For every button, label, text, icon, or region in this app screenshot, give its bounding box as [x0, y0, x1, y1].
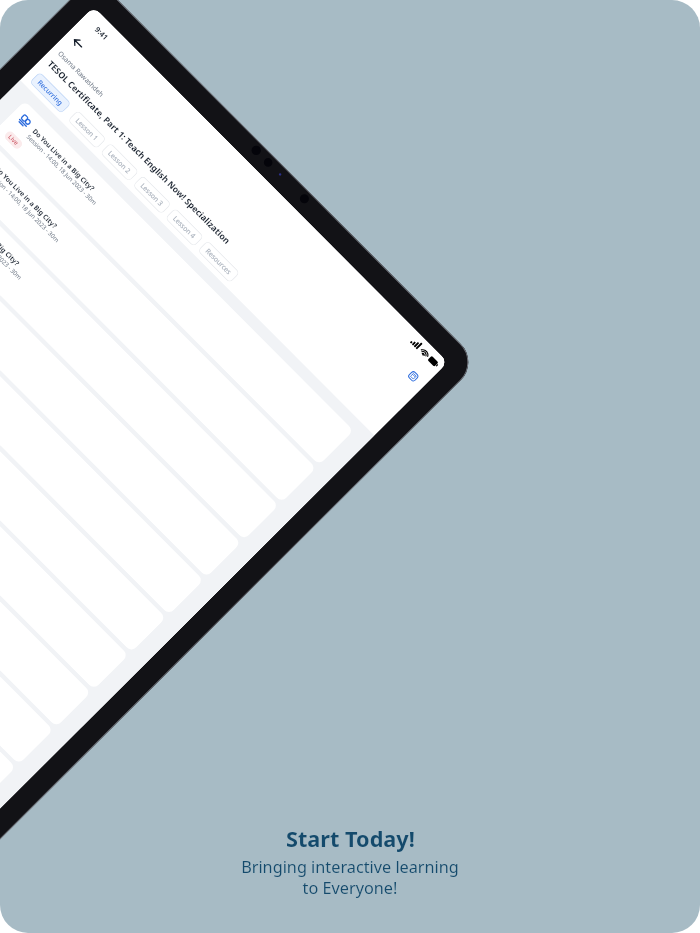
button[interactable]: Live: [0, 288, 166, 652]
staticText: Lesson 1: [74, 116, 100, 143]
staticText: 9:41: [93, 24, 111, 42]
staticText: Osama Rawashdeh: [56, 49, 106, 99]
staticText: TESOL Certificate, Part 1: Teach English…: [45, 58, 233, 247]
button[interactable]: Resources: [197, 240, 240, 283]
button[interactable]: Live: [0, 213, 241, 577]
staticText: Do You Live in a Big City?: [0, 164, 59, 231]
button[interactable]: Lesson 3: [132, 175, 172, 215]
staticText: Resources: [203, 246, 234, 277]
button[interactable]: Live: [0, 400, 53, 764]
staticText: Lesson 3: [139, 181, 165, 208]
button[interactable]: Live: [0, 325, 129, 690]
staticText: Do You Live in a Big City?: [30, 127, 97, 193]
button[interactable]: Live: [0, 437, 16, 802]
button[interactable]: Back: [68, 33, 88, 53]
button[interactable]: Live: [0, 175, 279, 540]
button[interactable]: Recurring: [29, 72, 72, 114]
staticText: Recurring: [35, 78, 65, 108]
button[interactable]: Lesson 4: [165, 208, 204, 247]
staticText: Session - 14:00, 18 Jun 2023 - 30m: [25, 133, 98, 207]
button[interactable]: Live: [0, 138, 316, 503]
button[interactable]: Live: [0, 250, 204, 615]
staticText: Do You Live in a Big City?: [0, 202, 22, 268]
button[interactable]: Live: [0, 100, 354, 465]
button[interactable]: Documents: [407, 370, 420, 383]
staticText: Session - 14:00, 18 Jun 2023 - 30m: [0, 170, 61, 244]
button[interactable]: Lesson 2: [100, 142, 139, 182]
staticText: Lesson 4: [171, 214, 198, 241]
staticText: Start Today!: [286, 824, 415, 854]
button[interactable]: Live: [0, 362, 91, 727]
staticText: Live: [6, 133, 21, 147]
staticText: Bringing interactive learning to Everyon…: [241, 856, 459, 899]
staticText: Lesson 2: [106, 149, 133, 176]
button[interactable]: Lesson 1: [67, 110, 107, 149]
staticText: Session - 14:00, 18 Jun 2023 - 30m: [0, 208, 23, 281]
